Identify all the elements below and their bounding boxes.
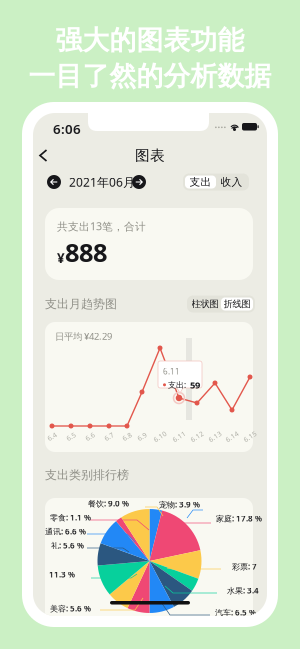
button[interactable]: 柱状图 bbox=[189, 297, 221, 310]
staticText: 彩票: 7 bbox=[232, 561, 257, 572]
staticText: 6.6 bbox=[85, 432, 95, 441]
staticText: 支出月趋势图 bbox=[45, 297, 117, 311]
staticText: 一目了然的分析数据 bbox=[28, 60, 271, 93]
staticText: 6.8 bbox=[122, 432, 132, 441]
staticText: 汽车: 6.5 % bbox=[215, 607, 256, 618]
staticText: 零食: 1.1 % bbox=[50, 512, 91, 523]
staticText: 餐饮: 9.0 % bbox=[88, 498, 129, 509]
staticText: 家庭: 17.8 % bbox=[216, 513, 262, 524]
staticText: 图表 bbox=[135, 146, 165, 164]
staticText: 礼: 5.6 % bbox=[51, 540, 84, 551]
staticText: 宠物: 3.9 % bbox=[159, 499, 200, 510]
staticText: 共支出13笔，合计 bbox=[57, 219, 146, 233]
staticText: 6.4 bbox=[47, 432, 57, 441]
staticText: 6.11 bbox=[163, 366, 180, 377]
staticText: 6:06 bbox=[53, 120, 81, 138]
staticText: 6.11 bbox=[172, 432, 186, 441]
button[interactable]: 支出 bbox=[185, 175, 216, 188]
staticText: 支出类别排行榜 bbox=[45, 468, 129, 482]
staticText: 2021年06月 bbox=[69, 174, 135, 190]
button[interactable]: 返回 bbox=[33, 143, 53, 168]
staticText: 11.3 % bbox=[49, 569, 75, 580]
staticText: 强大的图表功能 bbox=[55, 24, 244, 57]
button[interactable]: 上个月 bbox=[47, 175, 61, 189]
staticText: 柱状图 bbox=[191, 298, 218, 310]
staticText: 水果: 3.4 bbox=[227, 585, 259, 596]
staticText: 6.15 bbox=[243, 432, 257, 441]
button[interactable]: 收入 bbox=[216, 175, 247, 188]
staticText: 美容: 5.6 % bbox=[50, 603, 91, 614]
staticText: 6.12 bbox=[190, 432, 204, 441]
staticText: 888 bbox=[65, 235, 107, 269]
staticText: 6.13 bbox=[208, 432, 222, 441]
staticText: 通讯: 6.6 % bbox=[45, 526, 86, 537]
staticText: 收入 bbox=[220, 175, 242, 188]
staticText: 折线图 bbox=[223, 298, 250, 310]
staticText: 6.5 bbox=[66, 432, 76, 441]
button[interactable]: 折线图 bbox=[221, 297, 253, 310]
staticText: 支出 bbox=[189, 175, 211, 188]
staticText: 支出: bbox=[168, 379, 188, 390]
staticText: 日平均 ¥42.29 bbox=[55, 330, 112, 342]
staticText: 6.10 bbox=[153, 432, 167, 441]
button[interactable]: 下个月 bbox=[132, 175, 146, 189]
staticText: ¥ bbox=[57, 249, 65, 267]
staticText: 6.9 bbox=[137, 432, 147, 441]
staticText: 6.7 bbox=[104, 432, 114, 441]
staticText: 59 bbox=[190, 379, 200, 391]
staticText: 6.14 bbox=[225, 432, 239, 441]
